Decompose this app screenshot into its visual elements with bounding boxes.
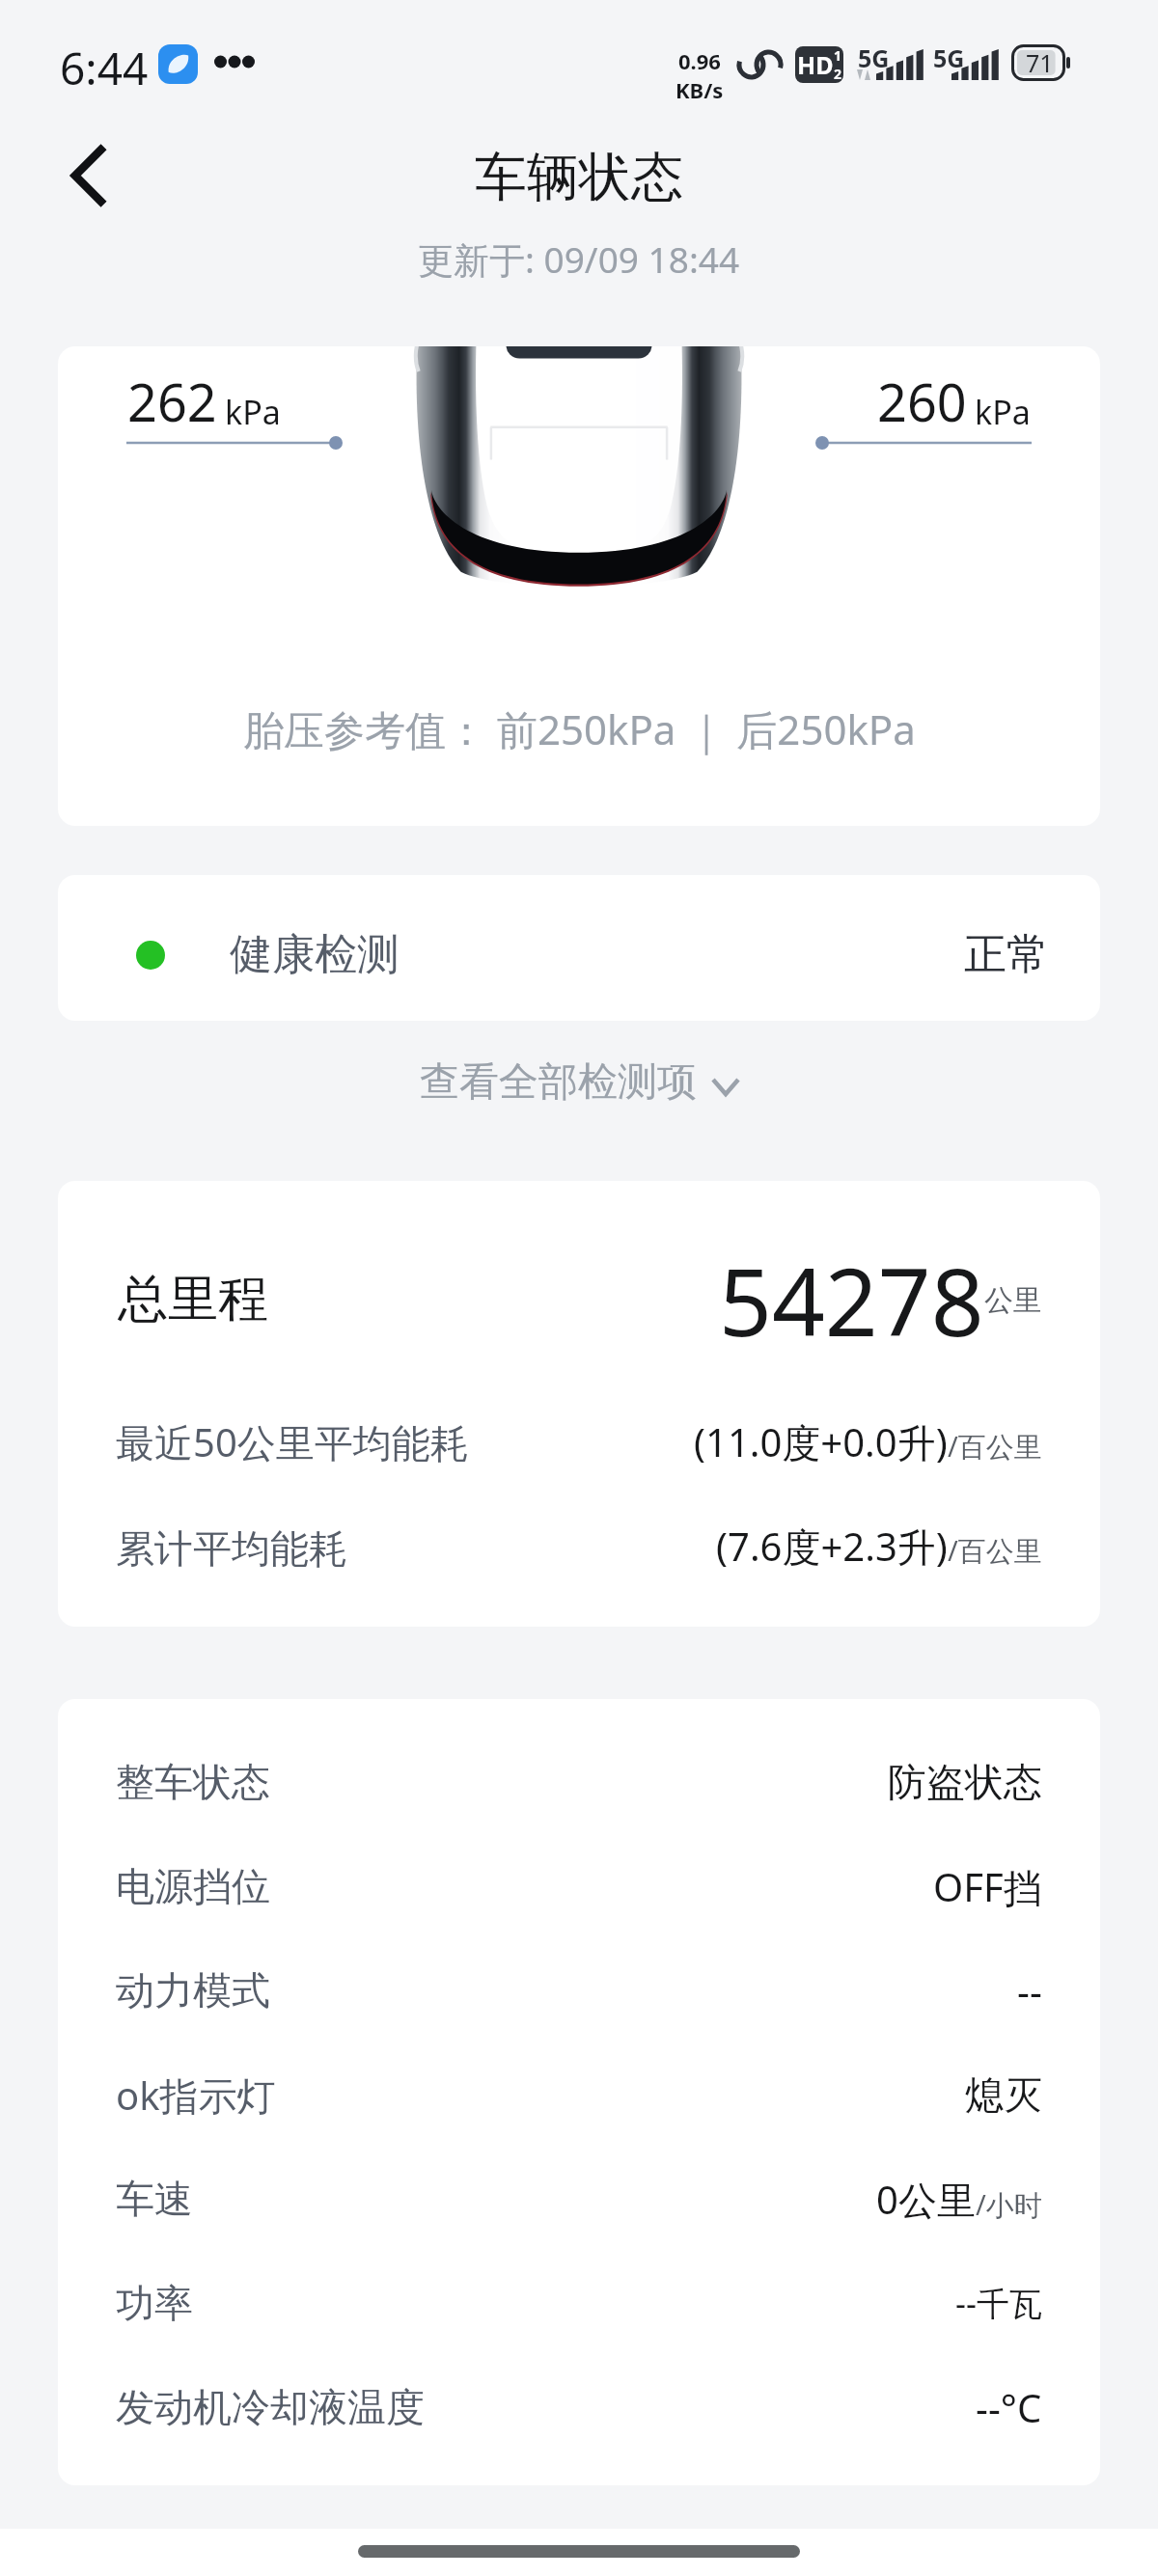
button[interactable]: Back: [41, 125, 141, 226]
staticText: 1: [834, 46, 842, 65]
staticText: KB/s: [675, 75, 724, 104]
staticText: 更新于: 09/09 18:44: [418, 234, 740, 284]
staticText: 262: [127, 366, 217, 437]
staticText: 防盗状态: [888, 1758, 1042, 1806]
staticText: 0.96: [678, 46, 721, 75]
staticText: 发动机冷却液温度: [116, 2383, 425, 2431]
staticText: 健康检测: [230, 928, 400, 981]
staticText: 查看全部检测项: [420, 1057, 697, 1108]
staticText: 2: [834, 65, 842, 83]
staticText: kPa: [225, 390, 281, 434]
staticText: 累计平均能耗: [116, 1524, 347, 1573]
staticText: /百公里: [948, 1427, 1042, 1466]
staticText: --°C: [976, 2381, 1042, 2433]
staticText: kPa: [975, 390, 1031, 434]
staticText: 熄灭: [965, 2070, 1042, 2119]
staticText: ok指示灯: [116, 2069, 276, 2122]
staticText: OFF挡: [933, 1860, 1042, 1913]
staticText: --: [1017, 1964, 1042, 2016]
staticText: 最近50公里平均能耗: [116, 1415, 469, 1468]
staticText: 整车状态: [116, 1758, 270, 1806]
staticText: 胎压参考值： 前250kPa ｜ 后250kPa: [243, 701, 916, 756]
staticText: 71: [1026, 46, 1054, 79]
staticText: 0公里: [876, 2173, 976, 2226]
staticText: 5G: [858, 41, 890, 74]
staticText: 5G: [933, 41, 965, 74]
button[interactable]: 健康检测: [58, 875, 1100, 1021]
staticText: /百公里: [948, 1531, 1042, 1570]
staticText: 公里: [984, 1282, 1042, 1319]
staticText: (7.6度+2.3升): [716, 1520, 948, 1573]
staticText: 总里程: [118, 1268, 268, 1331]
staticText: 6:44: [60, 38, 149, 98]
staticText: 54278: [719, 1237, 984, 1363]
staticText: 260: [877, 366, 967, 437]
staticText: (11.0度+0.0升): [694, 1415, 948, 1468]
button[interactable]: 查看全部检测项: [0, 1039, 1158, 1126]
staticText: 车辆状态: [475, 145, 683, 210]
staticText: HD: [797, 48, 834, 81]
staticText: 电源挡位: [116, 1862, 270, 1910]
staticText: 动力模式: [116, 1966, 270, 2014]
staticText: /小时: [976, 2185, 1042, 2224]
staticText: 车速: [116, 2175, 193, 2223]
staticText: 功率: [116, 2279, 193, 2327]
staticText: --千瓦: [955, 2281, 1042, 2325]
staticText: 正常: [964, 928, 1049, 981]
